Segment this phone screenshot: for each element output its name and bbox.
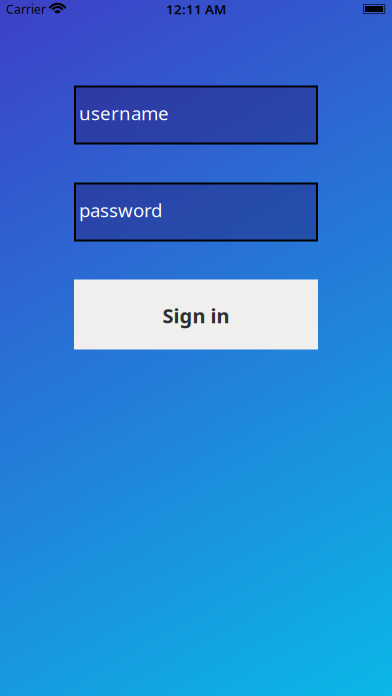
staticText: Carrier [6, 1, 46, 17]
staticText: password [79, 198, 162, 222]
button[interactable]: password [75, 183, 317, 240]
staticText: Sign in [162, 302, 229, 329]
button[interactable]: username [75, 86, 317, 143]
staticText: username [79, 101, 169, 125]
button[interactable]: Sign in [74, 279, 318, 349]
staticText: 12:11 AM [166, 0, 226, 18]
